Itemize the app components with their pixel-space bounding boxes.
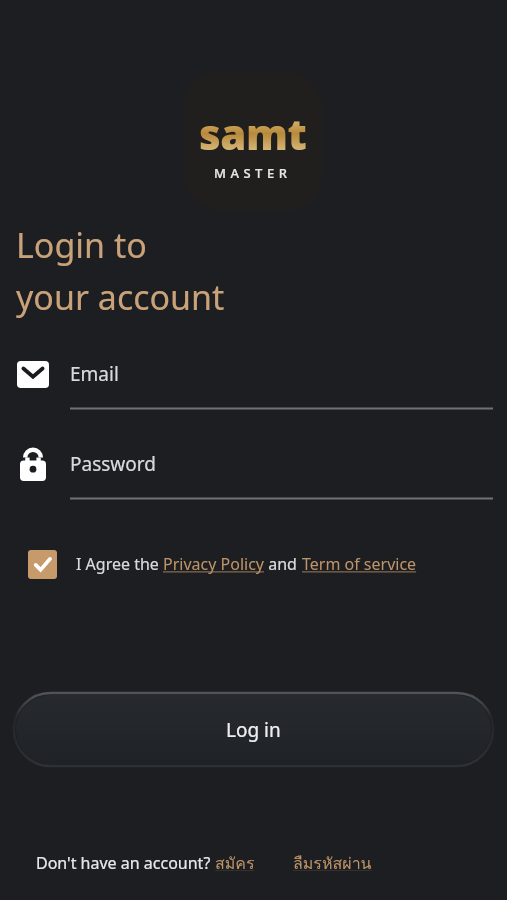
staticText: Password [70, 451, 156, 477]
button[interactable]: สมัคร [215, 851, 255, 876]
staticText: your account [16, 274, 225, 320]
staticText: I Agree the [76, 553, 163, 575]
staticText: MASTER [214, 164, 292, 182]
button[interactable]: Privacy Policy [163, 553, 264, 575]
button[interactable]: Term of service [302, 553, 417, 575]
button[interactable]: Email [16, 350, 493, 398]
staticText: Don't have an account? [36, 852, 215, 874]
button[interactable]: I Agree the [28, 542, 417, 586]
other: Email [16, 357, 50, 391]
staticText: Login to [16, 222, 147, 268]
button[interactable]: ลืมรหัสผ่าน [293, 851, 372, 876]
staticText: Email [70, 361, 119, 387]
button[interactable]: Password [16, 440, 493, 488]
other: Password [16, 447, 50, 481]
button[interactable]: Log in [16, 695, 491, 764]
staticText: and [264, 553, 302, 575]
staticText: samt [199, 105, 307, 162]
staticText: Log in [226, 717, 281, 743]
